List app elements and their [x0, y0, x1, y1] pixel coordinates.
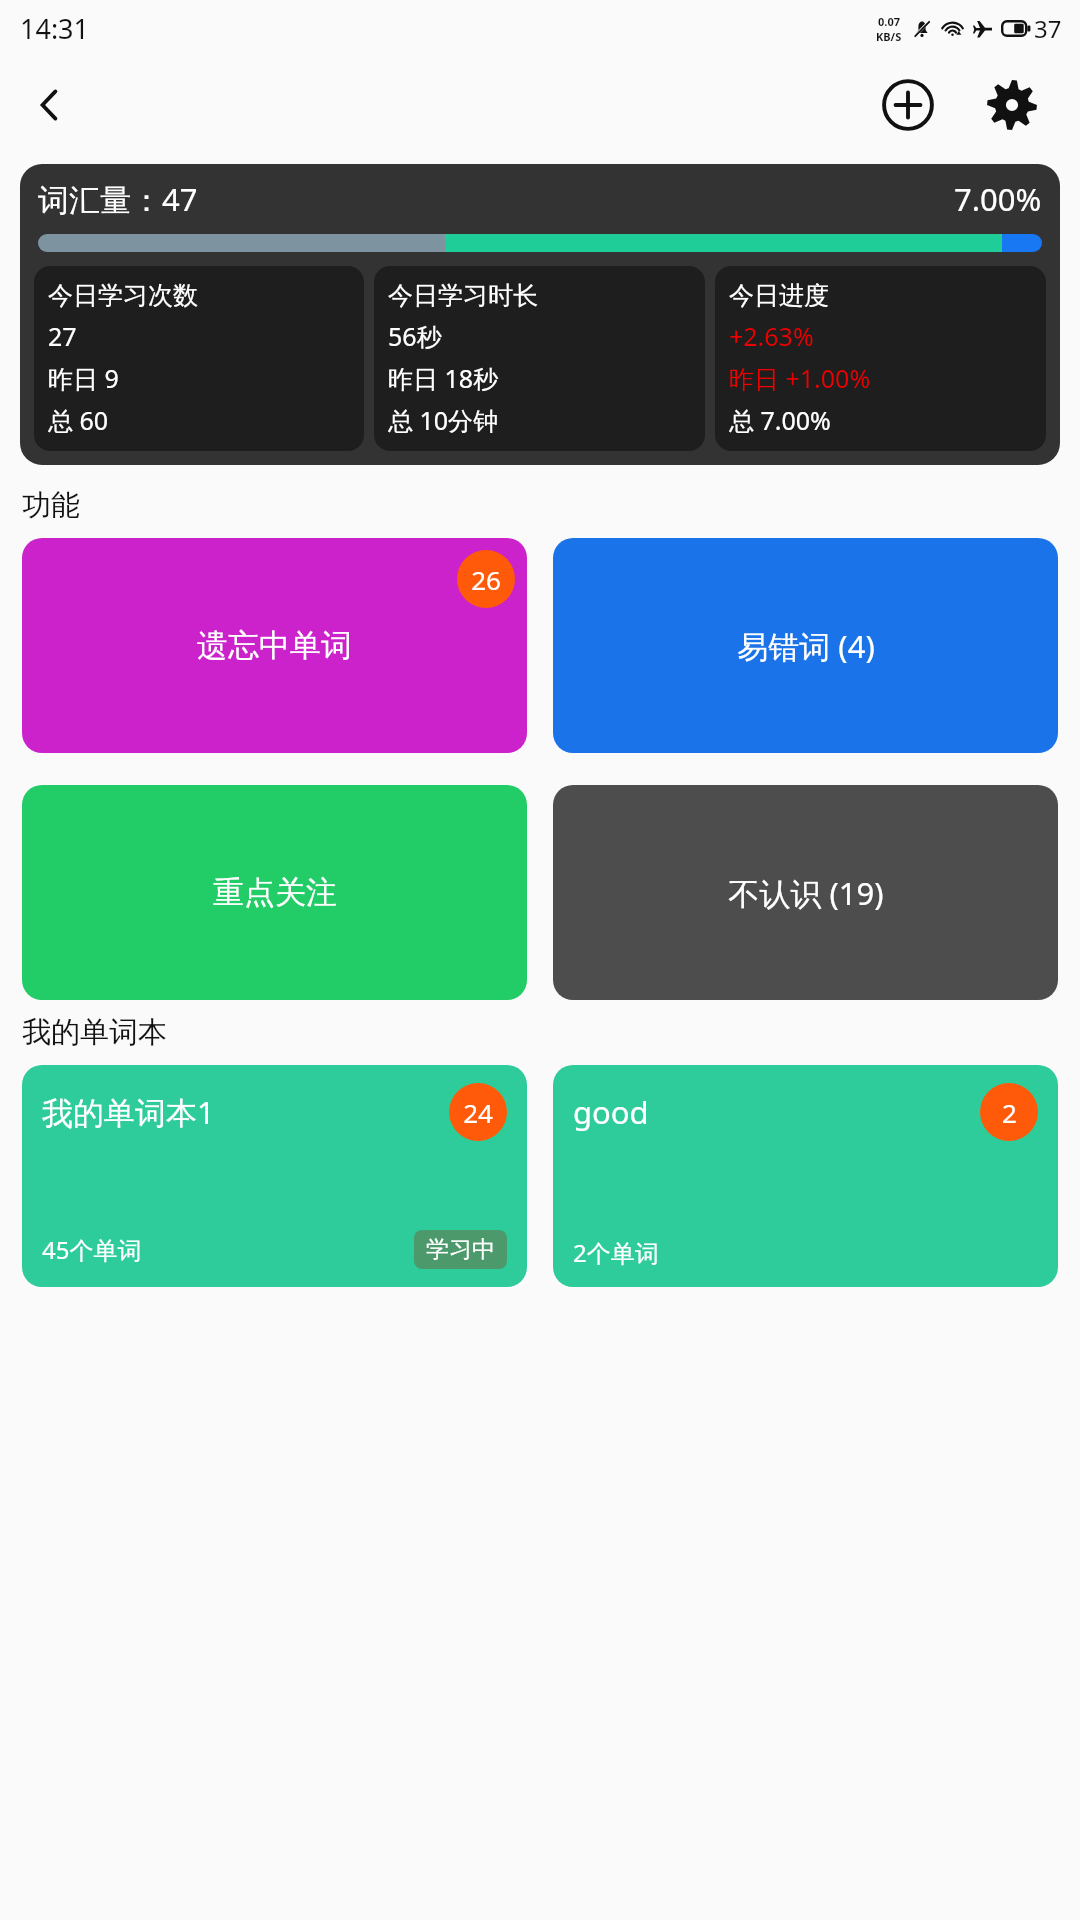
- staticText: 遗忘中单词: [197, 626, 352, 665]
- staticText: 今日进度: [729, 280, 829, 311]
- staticText: KB/S: [876, 29, 902, 44]
- staticText: 今日学习时长: [388, 280, 538, 311]
- staticText: 功能: [22, 487, 80, 524]
- button[interactable]: 词汇量：47: [20, 164, 1060, 465]
- button[interactable]: 我的单词本1: [22, 1065, 527, 1287]
- staticText: 7.00%: [954, 178, 1042, 220]
- staticText: 昨日 +1.00%: [729, 361, 871, 395]
- staticText: 26: [471, 562, 501, 597]
- staticText: 我的单词本1: [42, 1091, 215, 1133]
- staticText: 昨日 18秒: [388, 361, 499, 395]
- staticText: 我的单词本: [22, 1014, 167, 1051]
- button[interactable]: 不认识 (19): [553, 785, 1058, 1000]
- staticText: 2个单词: [573, 1236, 659, 1269]
- staticText: 27: [48, 319, 77, 353]
- staticText: 24: [463, 1095, 493, 1130]
- staticText: good: [573, 1091, 649, 1133]
- staticText: 14:31: [20, 10, 90, 47]
- staticText: 56秒: [388, 319, 442, 353]
- button[interactable]: 今日学习次数: [34, 266, 364, 451]
- staticText: 学习中: [426, 1235, 495, 1264]
- staticText: 昨日 9: [48, 361, 119, 395]
- button[interactable]: Settings: [974, 67, 1050, 143]
- button[interactable]: 重点关注: [22, 785, 527, 1000]
- staticText: 词汇量：47: [38, 178, 198, 220]
- button[interactable]: 易错词 (4): [553, 538, 1058, 753]
- button[interactable]: 今日进度: [715, 266, 1046, 451]
- staticText: 2: [1002, 1095, 1017, 1130]
- staticText: +2.63%: [729, 319, 814, 353]
- button[interactable]: 遗忘中单词: [22, 538, 527, 753]
- button[interactable]: good: [553, 1065, 1058, 1287]
- staticText: 0.07: [878, 14, 900, 29]
- button[interactable]: Back: [18, 73, 82, 137]
- staticText: 重点关注: [213, 873, 337, 912]
- staticText: 总 7.00%: [729, 403, 831, 437]
- button[interactable]: 今日学习时长: [374, 266, 705, 451]
- button[interactable]: Add: [870, 67, 946, 143]
- staticText: 总 60: [48, 403, 109, 437]
- staticText: 易错词 (4): [737, 625, 875, 667]
- staticText: 37: [1034, 12, 1062, 45]
- staticText: 总 10分钟: [388, 403, 499, 437]
- staticText: 45个单词: [42, 1233, 142, 1266]
- staticText: 今日学习次数: [48, 280, 198, 311]
- staticText: 不认识 (19): [728, 872, 884, 914]
